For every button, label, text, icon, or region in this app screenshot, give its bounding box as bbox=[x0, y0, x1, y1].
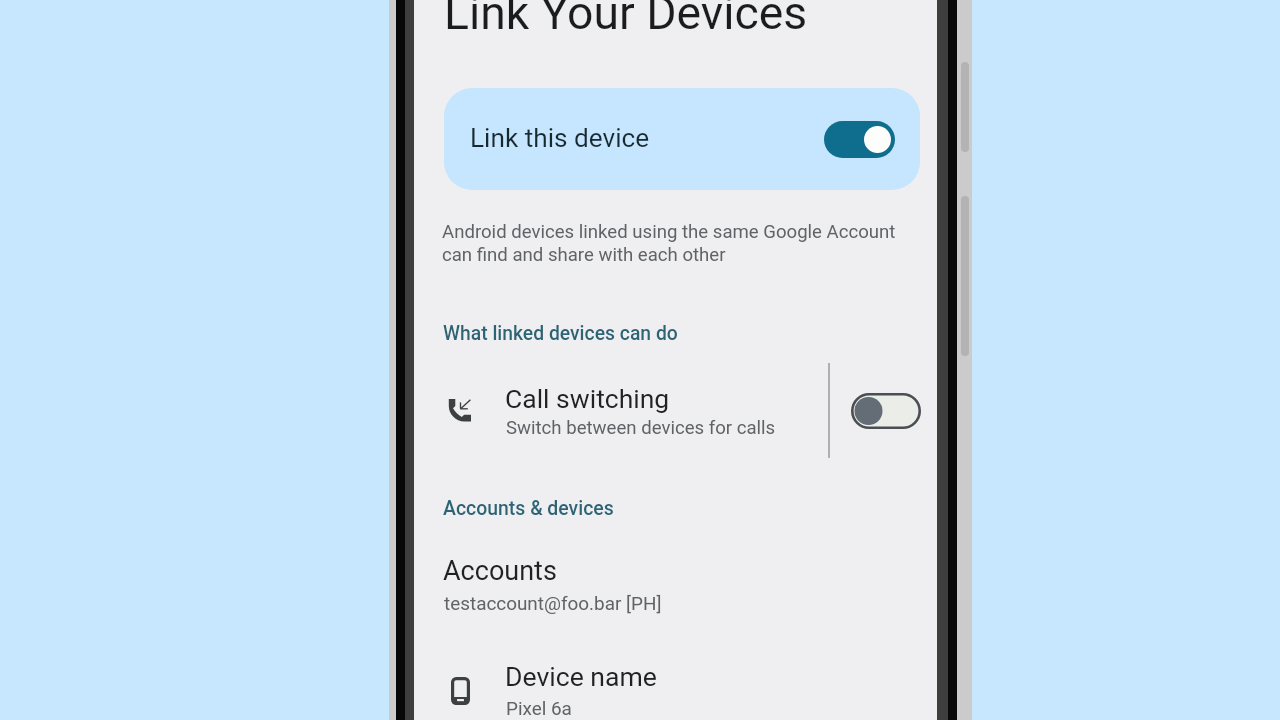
staticText: testaccount@foo.bar [PH] bbox=[444, 592, 662, 614]
staticText: Android devices linked using the same Go… bbox=[442, 221, 896, 266]
staticText: Pixel 6a bbox=[506, 697, 572, 719]
staticText: Link Your Devices bbox=[444, 0, 808, 40]
staticText: Link this device bbox=[470, 123, 650, 154]
staticText: What linked devices can do bbox=[443, 322, 678, 345]
staticText: Accounts & devices bbox=[443, 497, 614, 520]
button[interactable]: Link this device bbox=[444, 88, 920, 190]
staticText: Switch between devices for calls bbox=[506, 417, 776, 439]
staticText: Device name bbox=[505, 661, 657, 692]
button[interactable]: Call switching, off bbox=[851, 393, 921, 429]
staticText: Call switching bbox=[505, 383, 670, 414]
button[interactable]: Link this device, on bbox=[824, 121, 895, 158]
staticText: Accounts bbox=[443, 555, 557, 587]
